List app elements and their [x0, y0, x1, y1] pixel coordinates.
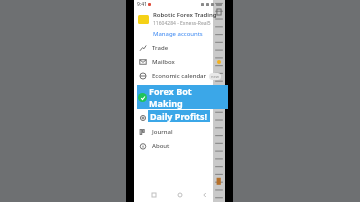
- staticText: Robotic Forex Trading: [153, 11, 217, 19]
- staticText: 11604284 - Exness-Real5: [153, 20, 211, 27]
- staticText: Forex Bot Making: [149, 85, 227, 109]
- staticText: Traders Community: [152, 86, 209, 94]
- staticText: Trade: [152, 44, 169, 52]
- button[interactable]: Journal: [134, 125, 225, 139]
- button[interactable]: Back: [200, 190, 210, 200]
- button[interactable]: Mailbox: [134, 55, 225, 69]
- button[interactable]: Robotic Forex Trading: [134, 9, 225, 38]
- staticText: Daily Profits!: [150, 110, 208, 122]
- staticText: new: [211, 74, 219, 79]
- staticText: 9:41: [137, 1, 147, 8]
- button[interactable]: Document: [216, 9, 222, 15]
- button[interactable]: Trade: [134, 41, 225, 55]
- button[interactable]: Settings: [134, 111, 225, 125]
- button[interactable]: About: [134, 139, 225, 153]
- staticText: Messages: [152, 100, 181, 108]
- button[interactable]: Traders Community: [134, 83, 225, 97]
- button[interactable]: Economic calendar: [134, 69, 225, 83]
- staticText: Settings: [152, 114, 176, 122]
- button[interactable]: Home: [175, 190, 185, 200]
- staticText: Economic calendar: [152, 72, 207, 80]
- button[interactable]: Messages: [134, 97, 225, 111]
- staticText: Mailbox: [152, 58, 175, 66]
- staticText: About: [152, 142, 170, 150]
- staticText: Journal: [152, 128, 173, 136]
- staticText: Manage accounts: [153, 30, 203, 38]
- button[interactable]: Recent apps: [149, 190, 159, 200]
- button[interactable]: Manage accounts: [153, 30, 203, 38]
